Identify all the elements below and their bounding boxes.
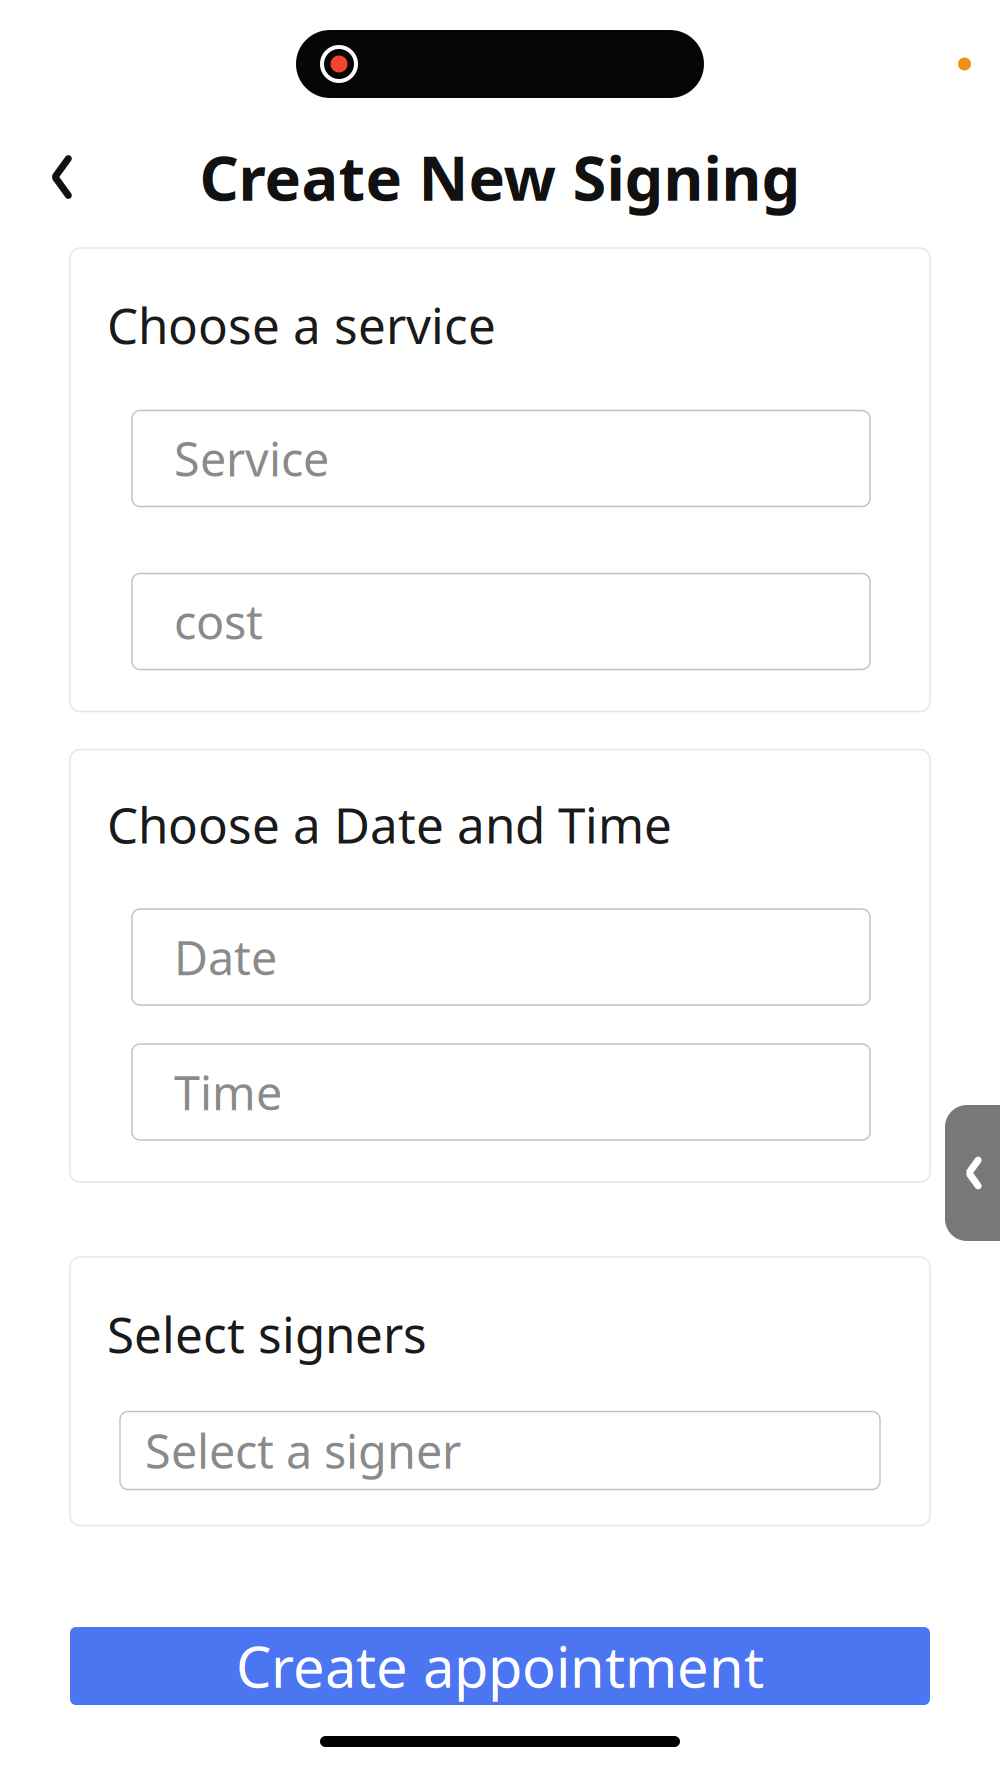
button[interactable]: Service [132,410,870,506]
button[interactable]: cost [132,573,870,669]
staticText: Time [174,1061,282,1123]
button[interactable]: Select a signer [120,1411,880,1489]
button[interactable]: Open side panel [945,1105,1000,1241]
staticText: cost [174,590,263,652]
staticText: Date [174,926,277,988]
button[interactable]: Create appointment [70,1627,930,1705]
button[interactable]: Back [23,138,101,216]
staticText: Service [174,427,329,489]
button[interactable]: Date [132,909,870,1005]
staticText: Create New Signing [199,136,800,218]
staticText: Choose a Date and Time [107,791,672,857]
staticText: Select a signer [145,1419,461,1481]
staticText: Create appointment [236,1629,764,1703]
staticText: Select signers [107,1301,427,1366]
button[interactable]: Time [132,1044,870,1140]
staticText: Choose a service [107,292,496,357]
